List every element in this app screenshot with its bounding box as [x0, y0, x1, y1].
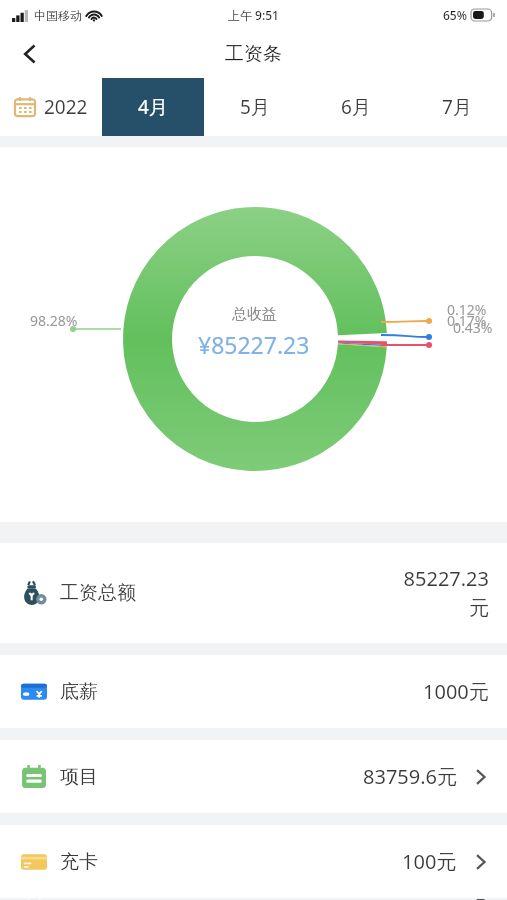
staticText: 项目 [60, 765, 98, 789]
button[interactable]: 6月 [305, 78, 406, 136]
staticText: 底薪 [60, 680, 98, 704]
staticText: 1000元 [423, 678, 489, 705]
staticText: 元 [469, 596, 489, 621]
staticText: 85227.23 [403, 565, 489, 592]
button[interactable]: 7月 [406, 78, 507, 136]
staticText: 83759.6元 [363, 763, 457, 790]
staticText: 充卡 [60, 850, 98, 874]
staticText: 上午 9:51 [228, 7, 279, 23]
staticText: 100元 [402, 848, 457, 875]
staticText: 65% [443, 7, 467, 23]
staticText: 0.17% [447, 311, 487, 330]
button[interactable]: Back [8, 32, 52, 76]
button[interactable]: 充卡 [0, 825, 507, 898]
button[interactable]: 工资总额 [0, 543, 507, 643]
button[interactable]: 4月 [102, 78, 204, 136]
staticText: 6月 [341, 94, 371, 120]
staticText: 中国移动 [34, 8, 82, 23]
button[interactable]: 2022 [0, 78, 102, 136]
button[interactable]: 5月 [204, 78, 305, 136]
staticText: 工资条 [225, 42, 282, 66]
staticText: 98.28% [30, 311, 78, 330]
staticText: 5月 [240, 94, 270, 120]
staticText: 2022 [44, 94, 88, 120]
button[interactable]: 底薪 [0, 655, 507, 728]
staticText: 工资总额 [60, 581, 136, 605]
button[interactable]: 项目 [0, 740, 507, 813]
staticText: ¥85227.23 [198, 329, 310, 360]
staticText: 0.43% [453, 318, 493, 337]
staticText: 4月 [138, 94, 168, 120]
staticText: 7月 [442, 94, 472, 120]
staticText: 总收益 [232, 305, 277, 324]
staticText: 0.12% [447, 300, 487, 319]
